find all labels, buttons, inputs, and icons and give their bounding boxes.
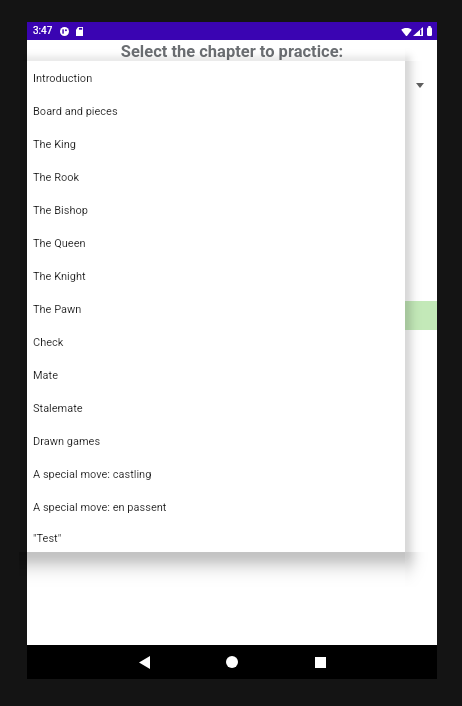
button[interactable]: Stalemate — [27, 392, 405, 425]
button[interactable]: Check — [27, 326, 405, 359]
button[interactable]: Introduction — [27, 62, 405, 95]
staticText: Mate — [33, 369, 59, 382]
button[interactable]: The King — [27, 128, 405, 161]
staticText: The Rook — [33, 171, 80, 184]
button[interactable]: The Rook — [27, 161, 405, 194]
staticText: The Bishop — [33, 204, 88, 217]
button[interactable]: Board and pieces — [27, 95, 405, 128]
button[interactable]: Drawn games — [27, 425, 405, 458]
button[interactable]: A special move: castling — [27, 458, 405, 491]
staticText: Board and pieces — [33, 105, 118, 118]
staticText: "Test" — [33, 532, 62, 545]
staticText: Drawn games — [33, 435, 101, 448]
button[interactable]: Home — [202, 645, 262, 679]
button[interactable]: "Test" — [27, 524, 405, 552]
staticText: A special move: castling — [33, 468, 152, 481]
button[interactable]: A special move: en passent — [27, 491, 405, 524]
button[interactable]: Back — [114, 645, 174, 679]
button[interactable]: The Knight — [27, 260, 405, 293]
staticText: 3:47 — [33, 25, 53, 37]
staticText: A special move: en passent — [33, 501, 167, 514]
staticText: The Queen — [33, 237, 86, 250]
staticText: Select the chapter to practice: — [27, 42, 437, 61]
button[interactable]: The Pawn — [27, 293, 405, 326]
button[interactable]: Open chapter dropdown — [405, 70, 435, 100]
staticText: Introduction — [33, 72, 93, 85]
button[interactable]: The Bishop — [27, 194, 405, 227]
staticText: Stalemate — [33, 402, 83, 415]
button[interactable]: The Queen — [27, 227, 405, 260]
staticText: The Pawn — [33, 303, 82, 316]
staticText: Check — [33, 336, 64, 349]
staticText: The Knight — [33, 270, 86, 283]
button[interactable]: Mate — [27, 359, 405, 392]
button[interactable]: Recent apps — [290, 645, 350, 679]
staticText: The King — [33, 138, 77, 151]
